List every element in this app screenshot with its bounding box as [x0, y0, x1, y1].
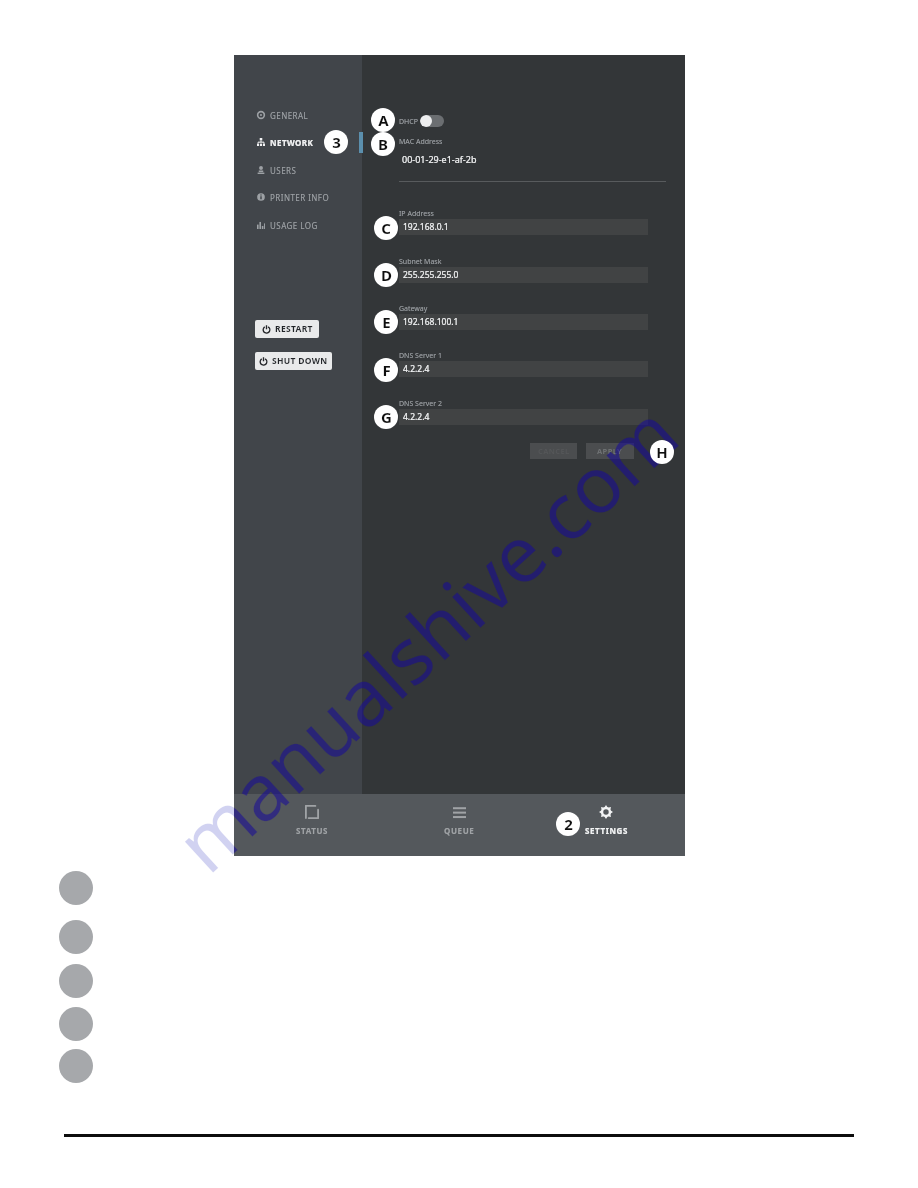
button[interactable]: 255.255.255.0: [399, 267, 648, 283]
staticText: MAC Address: [399, 137, 443, 147]
button[interactable]: RESTART: [255, 320, 319, 338]
staticText: IP Address: [399, 209, 434, 219]
staticText: SETTINGS: [585, 825, 628, 836]
button[interactable]: DHCP toggle: [420, 115, 444, 127]
button[interactable]: Settings: [566, 794, 646, 856]
staticText: 192.168.100.1: [403, 316, 459, 328]
staticText: Gateway: [399, 304, 428, 314]
staticText: 2: [564, 814, 573, 834]
staticText: 192.168.0.1: [403, 221, 449, 233]
button[interactable]: 192.168.0.1: [399, 219, 648, 235]
button[interactable]: USERS: [234, 157, 362, 183]
staticText: APPLY: [597, 446, 623, 456]
other: Status: [305, 805, 319, 819]
button[interactable]: 192.168.100.1: [399, 314, 648, 330]
button[interactable]: USAGE LOG: [234, 212, 362, 238]
staticText: 3: [332, 132, 341, 152]
staticText: A: [378, 110, 389, 130]
staticText: manualshive.com: [152, 380, 699, 894]
button[interactable]: Status: [272, 794, 352, 856]
staticText: STATUS: [296, 825, 329, 836]
button[interactable]: Queue: [419, 794, 499, 856]
staticText: USAGE LOG: [270, 220, 318, 231]
staticText: NETWORK: [270, 137, 314, 148]
staticText: PRINTER INFO: [270, 192, 330, 203]
staticText: 255.255.255.0: [403, 269, 459, 281]
staticText: 4.2.2.4: [403, 411, 430, 423]
staticText: DNS Server 1: [399, 351, 442, 361]
staticText: QUEUE: [444, 825, 475, 836]
button[interactable]: GENERAL: [234, 102, 362, 128]
staticText: DHCP: [399, 117, 418, 127]
button[interactable]: NETWORK: [234, 129, 362, 155]
staticText: E: [382, 312, 391, 332]
other: Settings: [599, 805, 613, 819]
button[interactable]: 4.2.2.4: [399, 361, 648, 377]
other: Queue: [453, 806, 466, 819]
staticText: RESTART: [275, 323, 313, 335]
button[interactable]: 4.2.2.4: [399, 409, 648, 425]
button[interactable]: SHUT DOWN: [255, 352, 332, 370]
staticText: H: [656, 442, 668, 462]
staticText: 00-01-29-e1-af-2b: [402, 153, 477, 165]
staticText: manualshive.com: [152, 380, 699, 894]
staticText: G: [381, 407, 392, 427]
staticText: C: [381, 218, 391, 238]
staticText: DNS Server 2: [399, 399, 442, 409]
staticText: 4.2.2.4: [403, 363, 430, 375]
staticText: GENERAL: [270, 110, 309, 121]
staticText: USERS: [270, 165, 297, 176]
staticText: SHUT DOWN: [272, 355, 328, 367]
staticText: D: [381, 265, 392, 285]
staticText: F: [382, 360, 391, 380]
staticText: Subnet Mask: [399, 257, 442, 267]
button[interactable]: APPLY: [586, 443, 634, 459]
button[interactable]: PRINTER INFO: [234, 184, 362, 210]
staticText: B: [378, 134, 388, 154]
